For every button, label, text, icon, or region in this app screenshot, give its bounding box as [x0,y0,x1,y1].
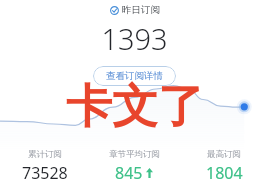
staticText: 累计订阅 [28,149,62,160]
button[interactable]: 章节平均订阅 [89,149,179,184]
staticText: 卡文了 [66,78,204,136]
staticText: 1393 [101,19,168,58]
staticText: 查看订阅详情 [106,70,163,82]
staticText: 最高订阅 [207,149,241,160]
staticText: 章节平均订阅 [109,149,160,160]
staticText: 1804 [206,162,243,184]
button[interactable]: 查看订阅详情 [93,66,176,86]
other: Increase [146,168,153,178]
staticText: 昨日订阅 [122,4,160,16]
staticText: 73528 [22,162,68,184]
button[interactable]: 最高订阅 [179,149,269,184]
button[interactable]: 累计订阅 [0,149,89,184]
staticText: 845 [115,162,143,184]
